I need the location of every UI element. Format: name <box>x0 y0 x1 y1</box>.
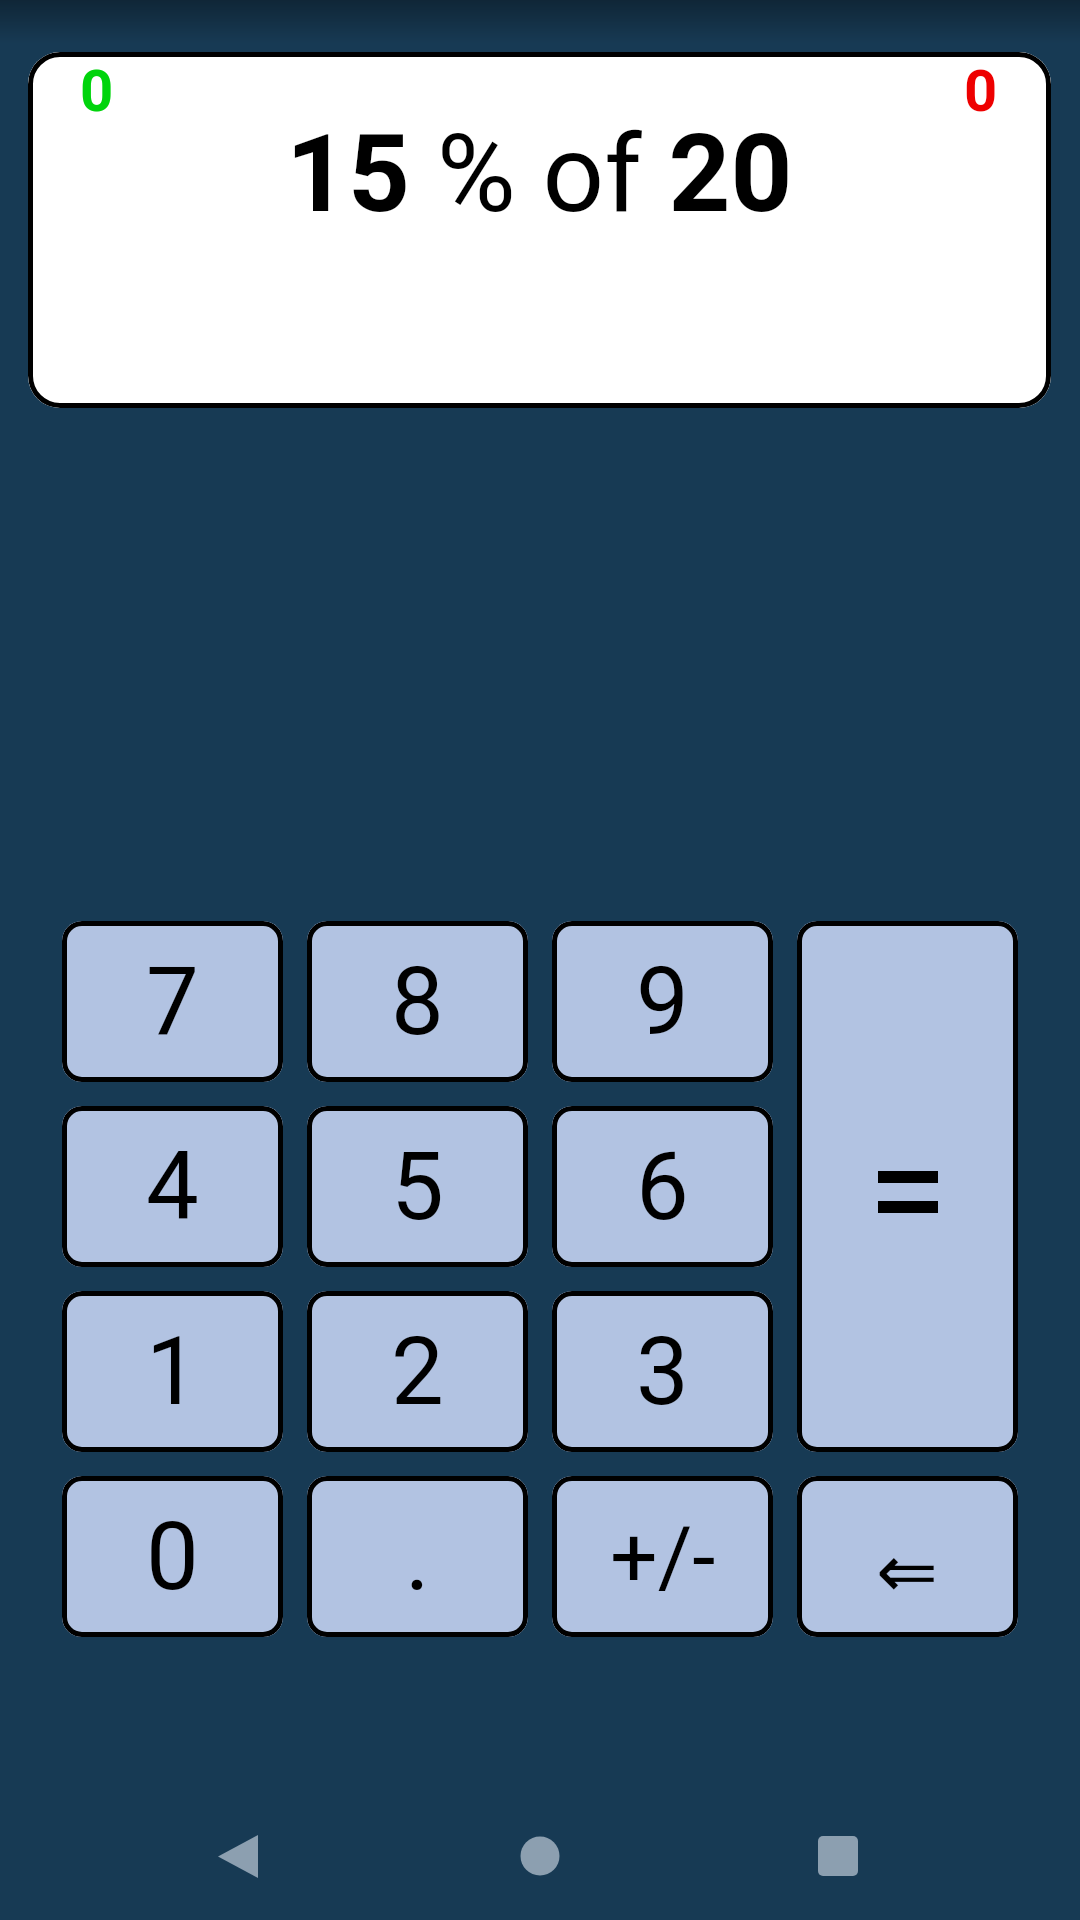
button[interactable]: 5 <box>307 1106 528 1267</box>
button[interactable]: ⇐ <box>797 1476 1018 1637</box>
staticText: 4 <box>146 1132 199 1242</box>
button[interactable]: 9 <box>552 921 773 1082</box>
button[interactable]: 7 <box>62 921 283 1082</box>
button[interactable]: . <box>307 1476 528 1637</box>
staticText: 0 <box>146 1502 199 1612</box>
staticText: 9 <box>636 947 689 1057</box>
staticText: +/- <box>610 1508 716 1606</box>
button[interactable]: 1 <box>62 1291 283 1452</box>
button[interactable]: 4 <box>62 1106 283 1267</box>
staticText: 0 <box>80 57 114 125</box>
button[interactable]: 6 <box>552 1106 773 1267</box>
staticText: 8 <box>391 947 444 1057</box>
button[interactable]: +/- <box>552 1476 773 1637</box>
button[interactable]: 8 <box>307 921 528 1082</box>
staticText: ⇐ <box>876 1528 939 1614</box>
button[interactable]: 3 <box>552 1291 773 1452</box>
staticText: 0 <box>964 57 998 125</box>
staticText: 15 % of 20 <box>286 111 793 238</box>
staticText: 5 <box>391 1132 444 1242</box>
staticText: 3 <box>636 1317 689 1427</box>
staticText: 7 <box>146 947 199 1057</box>
button[interactable] <box>790 1808 886 1904</box>
button[interactable] <box>492 1808 588 1904</box>
button[interactable] <box>797 921 1018 1452</box>
button[interactable]: 2 <box>307 1291 528 1452</box>
button[interactable]: 0 <box>62 1476 283 1637</box>
staticText: . <box>405 1502 430 1612</box>
staticText: 1 <box>146 1317 199 1427</box>
button[interactable] <box>190 1808 286 1904</box>
staticText: 6 <box>636 1132 689 1242</box>
staticText: 2 <box>391 1317 444 1427</box>
